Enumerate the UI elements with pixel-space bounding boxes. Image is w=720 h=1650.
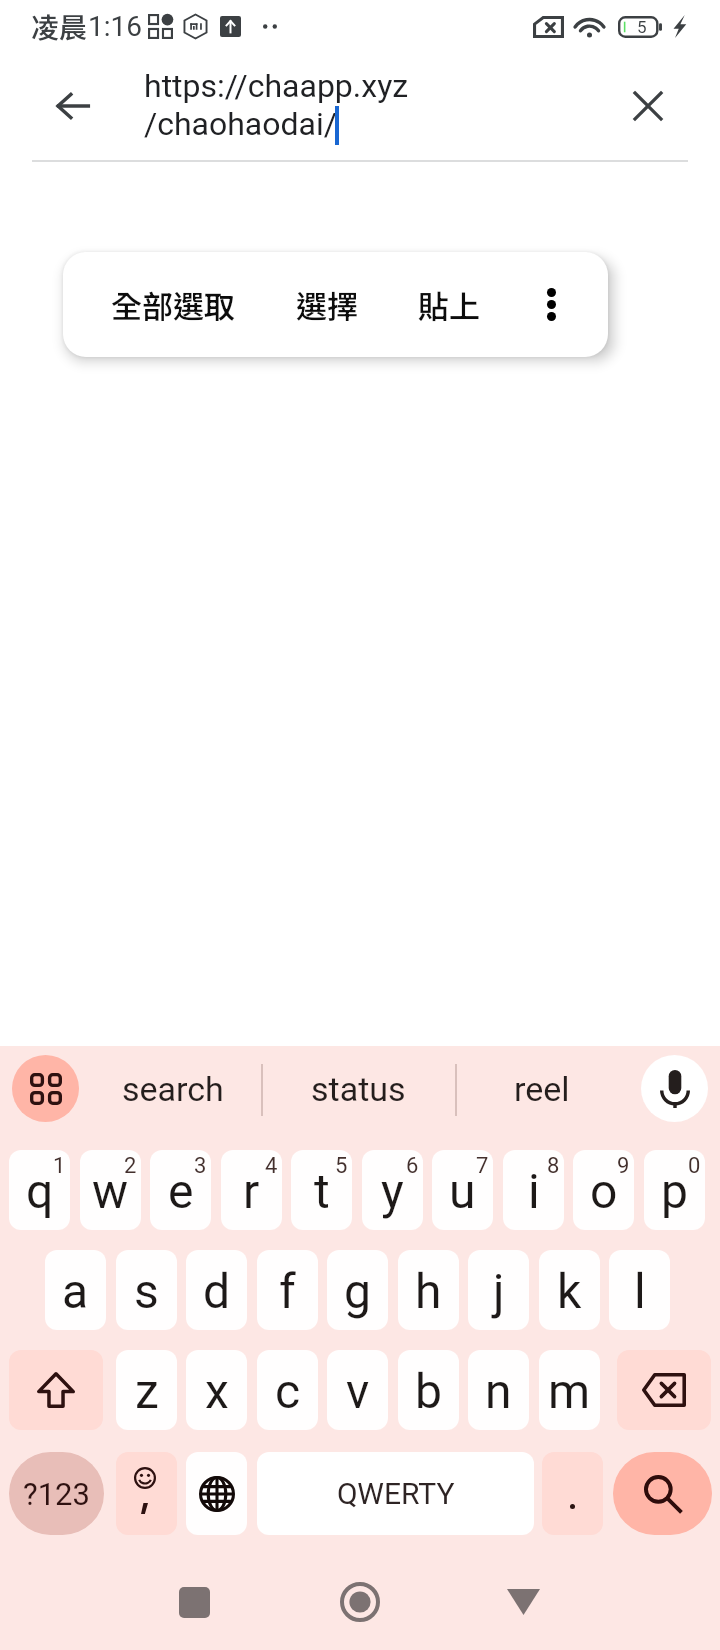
staticText: e: [168, 1163, 194, 1219]
staticText: 5: [335, 1153, 348, 1179]
staticText: reel: [514, 1069, 570, 1109]
button[interactable]: y: [362, 1150, 423, 1230]
staticText: q: [26, 1163, 54, 1219]
button[interactable]: Apps: [12, 1055, 79, 1122]
button[interactable]: o: [573, 1150, 634, 1230]
button[interactable]: x: [186, 1350, 247, 1430]
staticText: t: [314, 1163, 330, 1219]
staticText: g: [344, 1263, 371, 1319]
button[interactable]: n: [468, 1350, 529, 1430]
staticText: 8: [547, 1153, 560, 1179]
button[interactable]: Emoji: [116, 1452, 177, 1535]
staticText: 0: [688, 1153, 701, 1179]
button[interactable]: 全部選取: [104, 252, 242, 357]
staticText: 1: [53, 1153, 66, 1179]
button[interactable]: b: [398, 1350, 459, 1430]
button[interactable]: l: [609, 1250, 670, 1330]
staticText: 5: [637, 17, 647, 37]
button[interactable]: QWERTY: [257, 1452, 534, 1535]
button[interactable]: g: [327, 1250, 388, 1330]
button[interactable]: u: [432, 1150, 493, 1230]
staticText: h: [415, 1263, 442, 1319]
button[interactable]: Clear: [608, 66, 688, 146]
button[interactable]: ?123: [9, 1452, 104, 1535]
staticText: v: [346, 1363, 370, 1419]
button[interactable]: m: [539, 1350, 600, 1430]
button[interactable]: e: [150, 1150, 211, 1230]
staticText: 4: [265, 1153, 278, 1179]
staticText: search: [122, 1069, 224, 1109]
button[interactable]: f: [257, 1250, 318, 1330]
staticText: f: [279, 1263, 296, 1319]
button[interactable]: status: [308, 1055, 409, 1123]
staticText: 凌晨: [31, 6, 88, 47]
button[interactable]: Home: [326, 1572, 394, 1632]
staticText: status: [311, 1069, 406, 1109]
button[interactable]: Recents: [160, 1572, 228, 1632]
button[interactable]: a: [45, 1250, 106, 1330]
button[interactable]: Shift: [9, 1350, 103, 1430]
staticText: QWERTY: [337, 1476, 455, 1511]
staticText: a: [62, 1263, 89, 1319]
button[interactable]: p: [644, 1150, 705, 1230]
staticText: 貼上: [418, 282, 480, 327]
staticText: x: [205, 1363, 229, 1419]
button[interactable]: t: [291, 1150, 352, 1230]
staticText: https://chaapp.xyz /chaohaodai/: [144, 67, 409, 143]
button[interactable]: i: [503, 1150, 564, 1230]
staticText: l: [634, 1263, 646, 1319]
staticText: y: [381, 1163, 404, 1219]
button[interactable]: search: [118, 1055, 228, 1123]
button[interactable]: h: [398, 1250, 459, 1330]
button[interactable]: c: [257, 1350, 318, 1430]
staticText: j: [493, 1263, 505, 1319]
button[interactable]: Back: [32, 66, 112, 146]
button[interactable]: 貼上: [400, 252, 497, 357]
staticText: s: [134, 1263, 159, 1319]
staticText: 6: [406, 1153, 419, 1179]
button[interactable]: 選擇: [275, 252, 378, 357]
button[interactable]: Period: [542, 1452, 603, 1535]
staticText: i: [528, 1163, 540, 1219]
button[interactable]: k: [539, 1250, 600, 1330]
button[interactable]: w: [80, 1150, 141, 1230]
staticText: k: [557, 1263, 582, 1319]
button[interactable]: d: [186, 1250, 247, 1330]
staticText: u: [449, 1163, 476, 1219]
button[interactable]: j: [468, 1250, 529, 1330]
button[interactable]: r: [221, 1150, 282, 1230]
button[interactable]: Backspace: [617, 1350, 711, 1430]
staticText: o: [590, 1163, 618, 1219]
staticText: b: [415, 1363, 442, 1419]
staticText: z: [135, 1363, 159, 1419]
staticText: 1:16: [88, 10, 142, 43]
button[interactable]: Back: [489, 1572, 557, 1632]
button[interactable]: Voice input: [641, 1055, 708, 1122]
staticText: 3: [194, 1153, 207, 1179]
staticText: p: [661, 1163, 688, 1219]
button[interactable]: Change language: [186, 1452, 247, 1535]
staticText: r: [243, 1163, 260, 1219]
button[interactable]: z: [116, 1350, 177, 1430]
staticText: d: [203, 1263, 231, 1319]
staticText: w: [92, 1163, 129, 1219]
button[interactable]: Search: [613, 1452, 712, 1535]
staticText: 2: [124, 1153, 137, 1179]
button[interactable]: q: [9, 1150, 70, 1230]
staticText: ?123: [23, 1476, 90, 1512]
staticText: 9: [617, 1153, 630, 1179]
staticText: 7: [476, 1153, 489, 1179]
staticText: 選擇: [296, 282, 358, 327]
staticText: c: [275, 1363, 301, 1419]
staticText: 全部選取: [111, 282, 235, 327]
button[interactable]: v: [327, 1350, 388, 1430]
staticText: m: [548, 1363, 591, 1419]
staticText: n: [485, 1363, 512, 1419]
button[interactable]: s: [116, 1250, 177, 1330]
button[interactable]: More options: [505, 252, 597, 357]
button[interactable]: reel: [508, 1055, 576, 1123]
